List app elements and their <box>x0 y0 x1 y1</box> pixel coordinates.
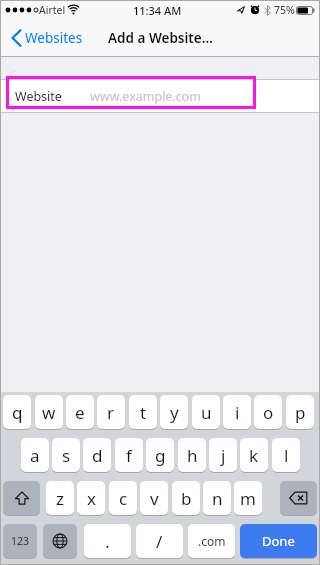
staticText: g <box>155 444 166 467</box>
staticText: q <box>12 401 23 424</box>
staticText: x <box>87 487 96 510</box>
staticText: i <box>235 401 240 424</box>
button[interactable]: / <box>136 524 183 558</box>
staticText: Done <box>262 532 295 550</box>
staticText: 75% <box>274 3 295 17</box>
button[interactable]: 123 <box>3 524 37 558</box>
staticText: k <box>249 444 259 467</box>
staticText: w <box>42 401 56 424</box>
button[interactable]: i <box>223 395 251 429</box>
button[interactable]: p <box>286 395 314 429</box>
staticText: 11:34 AM <box>133 3 182 18</box>
staticText: u <box>201 401 212 424</box>
button[interactable]: n <box>203 481 231 515</box>
staticText: Add a Website… <box>108 29 213 47</box>
button[interactable]: w <box>35 395 63 429</box>
button[interactable]: g <box>146 438 174 472</box>
button[interactable]: y <box>160 395 188 429</box>
staticText: b <box>181 487 192 510</box>
button[interactable]: x <box>77 481 105 515</box>
button[interactable]: u <box>192 395 220 429</box>
button[interactable]: c <box>109 481 137 515</box>
button[interactable]: Website <box>0 79 320 113</box>
staticText: s <box>62 444 71 467</box>
button[interactable]: f <box>115 438 143 472</box>
staticText: 123 <box>11 534 30 548</box>
button[interactable] <box>43 524 77 558</box>
button[interactable]: l <box>272 438 300 472</box>
staticText: f <box>126 444 132 467</box>
staticText: www.example.com <box>90 88 202 105</box>
staticText: p <box>295 401 306 424</box>
staticText: / <box>156 530 163 553</box>
staticText: Website <box>15 88 62 105</box>
button[interactable]: Websites <box>0 29 58 47</box>
staticText: d <box>92 444 103 467</box>
button[interactable]: .com <box>188 524 235 558</box>
staticText: o <box>263 401 274 424</box>
button[interactable]: v <box>140 481 168 515</box>
staticText: c <box>119 487 128 510</box>
button[interactable] <box>3 481 40 515</box>
staticText: h <box>187 444 198 467</box>
staticText: z <box>56 487 64 510</box>
staticText: v <box>150 487 159 510</box>
button[interactable]: o <box>254 395 282 429</box>
staticText: j <box>221 444 226 467</box>
button[interactable]: a <box>21 438 49 472</box>
staticText: n <box>212 487 223 510</box>
button[interactable]: m <box>234 481 262 515</box>
button[interactable]: j <box>209 438 237 472</box>
button[interactable]: Done <box>240 524 317 558</box>
staticText: Airtel <box>39 3 66 17</box>
button[interactable]: d <box>83 438 111 472</box>
staticText: l <box>284 444 289 467</box>
staticText: r <box>107 401 115 424</box>
staticText: y <box>170 401 179 424</box>
button[interactable]: e <box>66 395 94 429</box>
staticText: .com <box>198 533 226 549</box>
staticText: . <box>105 530 110 553</box>
button[interactable]: h <box>178 438 206 472</box>
button[interactable]: b <box>172 481 200 515</box>
button[interactable]: . <box>84 524 131 558</box>
staticText: e <box>75 401 85 424</box>
button[interactable] <box>280 481 317 515</box>
button[interactable]: q <box>3 395 31 429</box>
button[interactable]: z <box>46 481 74 515</box>
button[interactable]: t <box>129 395 157 429</box>
staticText: m <box>240 487 256 510</box>
button[interactable]: r <box>97 395 125 429</box>
staticText: t <box>140 401 147 424</box>
staticText: a <box>30 444 40 467</box>
button[interactable]: k <box>240 438 268 472</box>
staticText: Websites <box>25 29 83 47</box>
button[interactable]: s <box>52 438 80 472</box>
